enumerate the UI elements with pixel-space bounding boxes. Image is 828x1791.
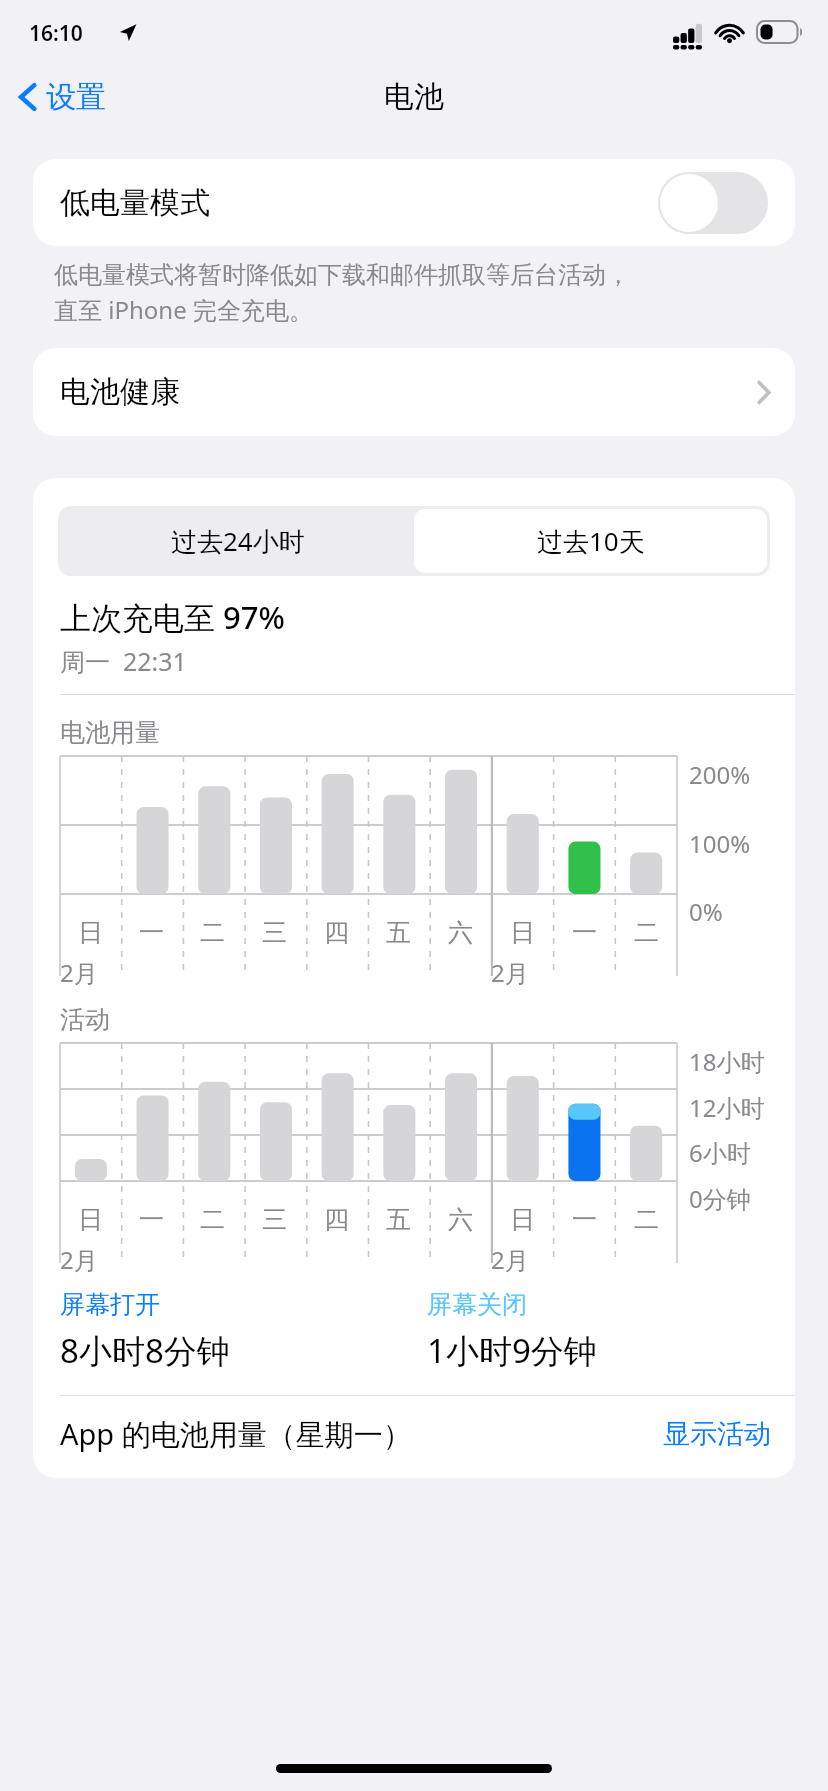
button[interactable]: 过去10天	[414, 509, 767, 573]
staticText: 一	[139, 1204, 164, 1235]
button[interactable]: 低电量模式	[33, 159, 795, 246]
staticText: 电池健康	[60, 373, 180, 411]
staticText: 2月27日	[491, 956, 553, 986]
staticText: 200%	[689, 758, 751, 791]
staticText: 五	[386, 917, 411, 948]
staticText: 一	[572, 1204, 597, 1235]
staticText: 2月20日	[60, 956, 121, 986]
button[interactable]: 过去24小时	[61, 509, 414, 573]
staticText: 活动	[60, 1004, 110, 1035]
staticText: 一	[139, 917, 164, 948]
button[interactable]: 显示活动	[663, 1417, 771, 1451]
staticText: 二	[634, 1204, 659, 1235]
button[interactable]: 电池健康	[33, 348, 795, 436]
staticText: 周一 22:31	[60, 644, 187, 678]
staticText: 屏幕打开	[60, 1289, 160, 1320]
staticText: 二	[200, 1204, 225, 1235]
staticText: 低电量模式	[60, 184, 210, 222]
staticText: 四	[324, 1204, 349, 1235]
staticText: 三	[262, 917, 287, 948]
staticText: 三	[262, 1204, 287, 1235]
staticText: 上次充电至 97%	[60, 596, 285, 638]
staticText: 日	[78, 1204, 103, 1235]
staticText: 四	[324, 917, 349, 948]
staticText: 2月27日	[491, 1243, 553, 1273]
staticText: 六	[448, 1204, 473, 1235]
staticText: 过去10天	[537, 523, 645, 559]
staticText: 二	[200, 917, 225, 948]
staticText: 电池	[384, 78, 444, 116]
staticText: 过去24小时	[171, 523, 305, 559]
staticText: 日	[78, 917, 103, 948]
staticText: 16:10	[29, 19, 83, 48]
staticText: 18小时	[689, 1045, 765, 1078]
button[interactable]: 低电量模式开关	[658, 172, 768, 234]
staticText: 屏幕关闭	[427, 1289, 527, 1320]
staticText: 0分钟	[689, 1182, 751, 1215]
staticText: 2月20日	[60, 1243, 121, 1273]
staticText: 0%	[689, 895, 723, 928]
staticText: 日	[510, 1204, 535, 1235]
staticText: App 的电池用量（星期一）	[60, 1414, 412, 1454]
staticText: 6小时	[689, 1136, 751, 1169]
staticText: 设置	[46, 78, 106, 116]
button[interactable]: 设置	[0, 72, 120, 122]
staticText: 五	[386, 1204, 411, 1235]
staticText: 二	[634, 917, 659, 948]
staticText: 日	[510, 917, 535, 948]
staticText: 一	[572, 917, 597, 948]
staticText: 8小时8分钟	[60, 1328, 230, 1373]
staticText: 1小时9分钟	[427, 1328, 597, 1373]
staticText: 六	[448, 917, 473, 948]
staticText: 低电量模式将暂时降低如下载和邮件抓取等后台活动， 直至 iPhone 完全充电。	[54, 260, 630, 326]
staticText: 100%	[689, 827, 751, 860]
staticText: 12小时	[689, 1091, 765, 1124]
staticText: 电池用量	[60, 717, 160, 748]
